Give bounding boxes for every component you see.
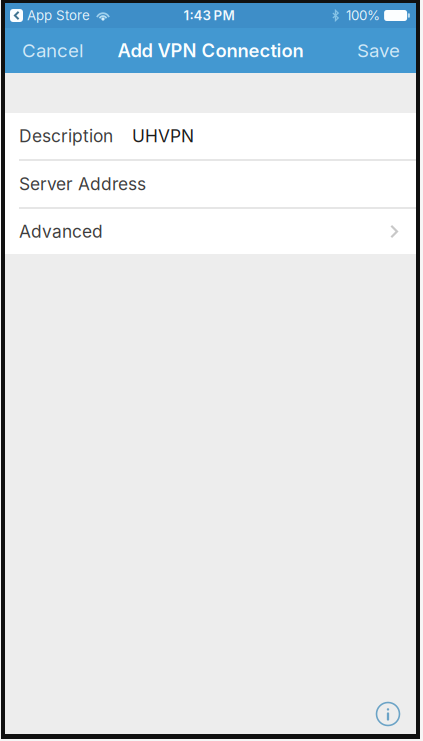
staticText: Save <box>357 39 400 62</box>
staticText: 100% <box>346 7 380 23</box>
staticText: Server Address <box>19 173 146 194</box>
staticText: Add VPN Connection <box>117 39 303 62</box>
button[interactable]: App Store <box>5 3 90 28</box>
button[interactable]: Save <box>345 28 416 73</box>
staticText: Advanced <box>19 221 103 242</box>
button[interactable]: Description <box>5 113 416 159</box>
staticText: UHVPN <box>132 125 194 146</box>
button[interactable]: Advanced <box>5 209 416 254</box>
staticText: 1:43 PM <box>183 7 234 23</box>
button[interactable]: Cancel <box>5 28 96 73</box>
button[interactable]: Server Address <box>5 161 416 207</box>
staticText: Description <box>19 125 113 146</box>
staticText: Cancel <box>22 39 84 62</box>
button[interactable]: Info <box>364 690 412 734</box>
staticText: App Store <box>27 7 90 23</box>
